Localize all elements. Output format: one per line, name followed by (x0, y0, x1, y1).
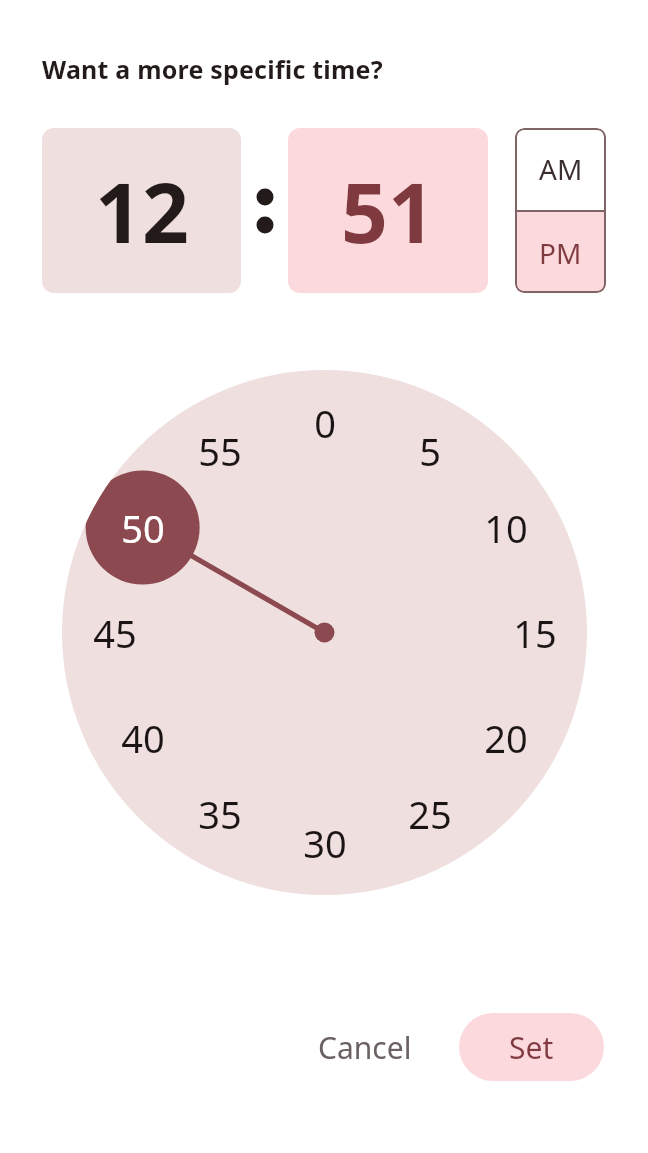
staticText: 12 (95, 155, 189, 267)
button[interactable]: Minute dial (62, 370, 587, 895)
staticText: 15 (513, 607, 557, 659)
staticText: 50 (121, 502, 165, 554)
button[interactable]: PM (515, 212, 606, 293)
staticText: Set (509, 1027, 554, 1068)
staticText: 40 (121, 712, 165, 764)
staticText: 45 (93, 607, 137, 659)
staticText: 51 (341, 155, 435, 267)
staticText: 25 (408, 788, 452, 840)
staticText: 10 (484, 502, 528, 554)
staticText: Want a more specific time? (42, 52, 383, 86)
staticText: 30 (303, 817, 347, 869)
button[interactable]: Cancel (300, 1016, 430, 1078)
staticText: Cancel (318, 1027, 412, 1068)
button[interactable]: Set (459, 1013, 604, 1081)
staticText: 55 (198, 425, 242, 477)
staticText: 5 (419, 425, 441, 477)
staticText: 35 (198, 788, 242, 840)
staticText: AM (539, 150, 583, 188)
button[interactable]: AM (515, 128, 606, 210)
button[interactable]: 51 (288, 128, 488, 293)
staticText: 20 (484, 712, 528, 764)
staticText: 0 (314, 397, 336, 449)
staticText: PM (539, 234, 582, 272)
button[interactable]: 12 (42, 128, 241, 293)
